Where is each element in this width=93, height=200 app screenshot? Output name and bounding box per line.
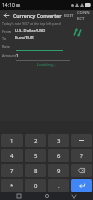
staticText: *: [10, 182, 14, 190]
staticText: 7: [10, 167, 14, 175]
button[interactable]: Enter: [71, 179, 92, 192]
button[interactable]: 1: [1, 134, 23, 147]
staticText: Today's rate 9/07 at the top left panel: [2, 21, 62, 26]
staticText: Rate: [2, 44, 11, 49]
button[interactable]: *: [1, 179, 23, 192]
button[interactable]: Back: [0, 10, 13, 21]
staticText: 9: [57, 167, 61, 175]
button[interactable]: [71, 134, 92, 147]
staticText: Loading...: [0, 62, 93, 68]
button[interactable]: Home: [39, 192, 55, 200]
staticText: Euro/EUR: [15, 35, 34, 41]
staticText: 1: [16, 53, 19, 59]
staticText: 0: [34, 182, 38, 190]
staticText: 2: [34, 137, 38, 145]
staticText: .: [58, 182, 60, 190]
staticText: ?: [80, 152, 83, 160]
staticText: 5: [34, 152, 38, 160]
staticText: Currency Converter: [13, 12, 62, 19]
button[interactable]: CONNECT: [76, 10, 93, 21]
button[interactable]: 8: [25, 164, 46, 177]
staticText: EDIT: [64, 13, 74, 19]
staticText: U.S. Dollar/USD: [15, 28, 46, 34]
button[interactable]: 6: [48, 149, 69, 162]
button[interactable]: 7: [1, 164, 23, 177]
staticText: From: [2, 29, 15, 34]
button[interactable]: Backspace: [71, 164, 92, 177]
button[interactable]: .: [48, 179, 69, 192]
staticText: Amount: [2, 53, 17, 58]
staticText: 3: [57, 137, 61, 145]
staticText: To: [2, 36, 15, 41]
button[interactable]: 4: [1, 149, 23, 162]
button[interactable]: ?: [71, 149, 92, 162]
button[interactable]: 0: [25, 179, 46, 192]
button[interactable]: Swap currencies: [71, 26, 84, 39]
button[interactable]: EDIT: [62, 10, 76, 21]
staticText: 8: [34, 167, 38, 175]
button[interactable]: 9: [48, 164, 69, 177]
button[interactable]: Back: [66, 192, 82, 200]
button[interactable]: Recents: [11, 192, 27, 200]
staticText: 14:10: [2, 2, 15, 9]
staticText: 1: [10, 137, 14, 145]
staticText: CONNECT: [77, 10, 90, 21]
staticText: 6: [57, 152, 61, 160]
staticText: 4: [10, 152, 14, 160]
button[interactable]: 5: [25, 149, 46, 162]
button[interactable]: 2: [25, 134, 46, 147]
button[interactable]: 3: [48, 134, 69, 147]
